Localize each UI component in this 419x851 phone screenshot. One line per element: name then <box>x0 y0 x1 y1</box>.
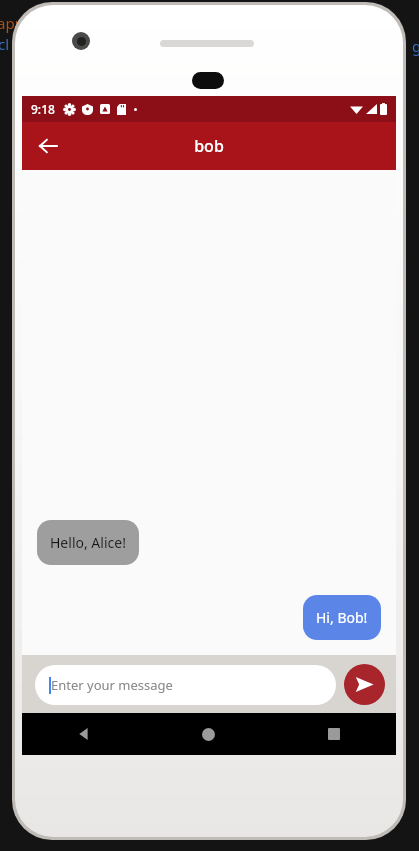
staticText: Hello, Alice! <box>50 533 126 552</box>
staticText: cl <box>0 34 10 54</box>
staticText: g <box>412 36 419 56</box>
staticText: 9:18 <box>31 101 55 117</box>
button[interactable]: Back <box>22 713 146 755</box>
button[interactable]: Hello, Alice! <box>37 520 139 565</box>
button[interactable]: Back <box>28 126 68 166</box>
staticText: Enter your message <box>51 676 173 694</box>
button[interactable]: Enter your message <box>35 665 336 705</box>
button[interactable]: Send <box>344 664 385 705</box>
staticText: app <box>0 13 24 33</box>
button[interactable]: Hi, Bob! <box>303 595 381 640</box>
staticText: Hi, Bob! <box>316 608 368 627</box>
staticText: bob <box>194 135 224 157</box>
button[interactable]: Recents <box>271 713 396 755</box>
button[interactable]: Home <box>146 713 271 755</box>
